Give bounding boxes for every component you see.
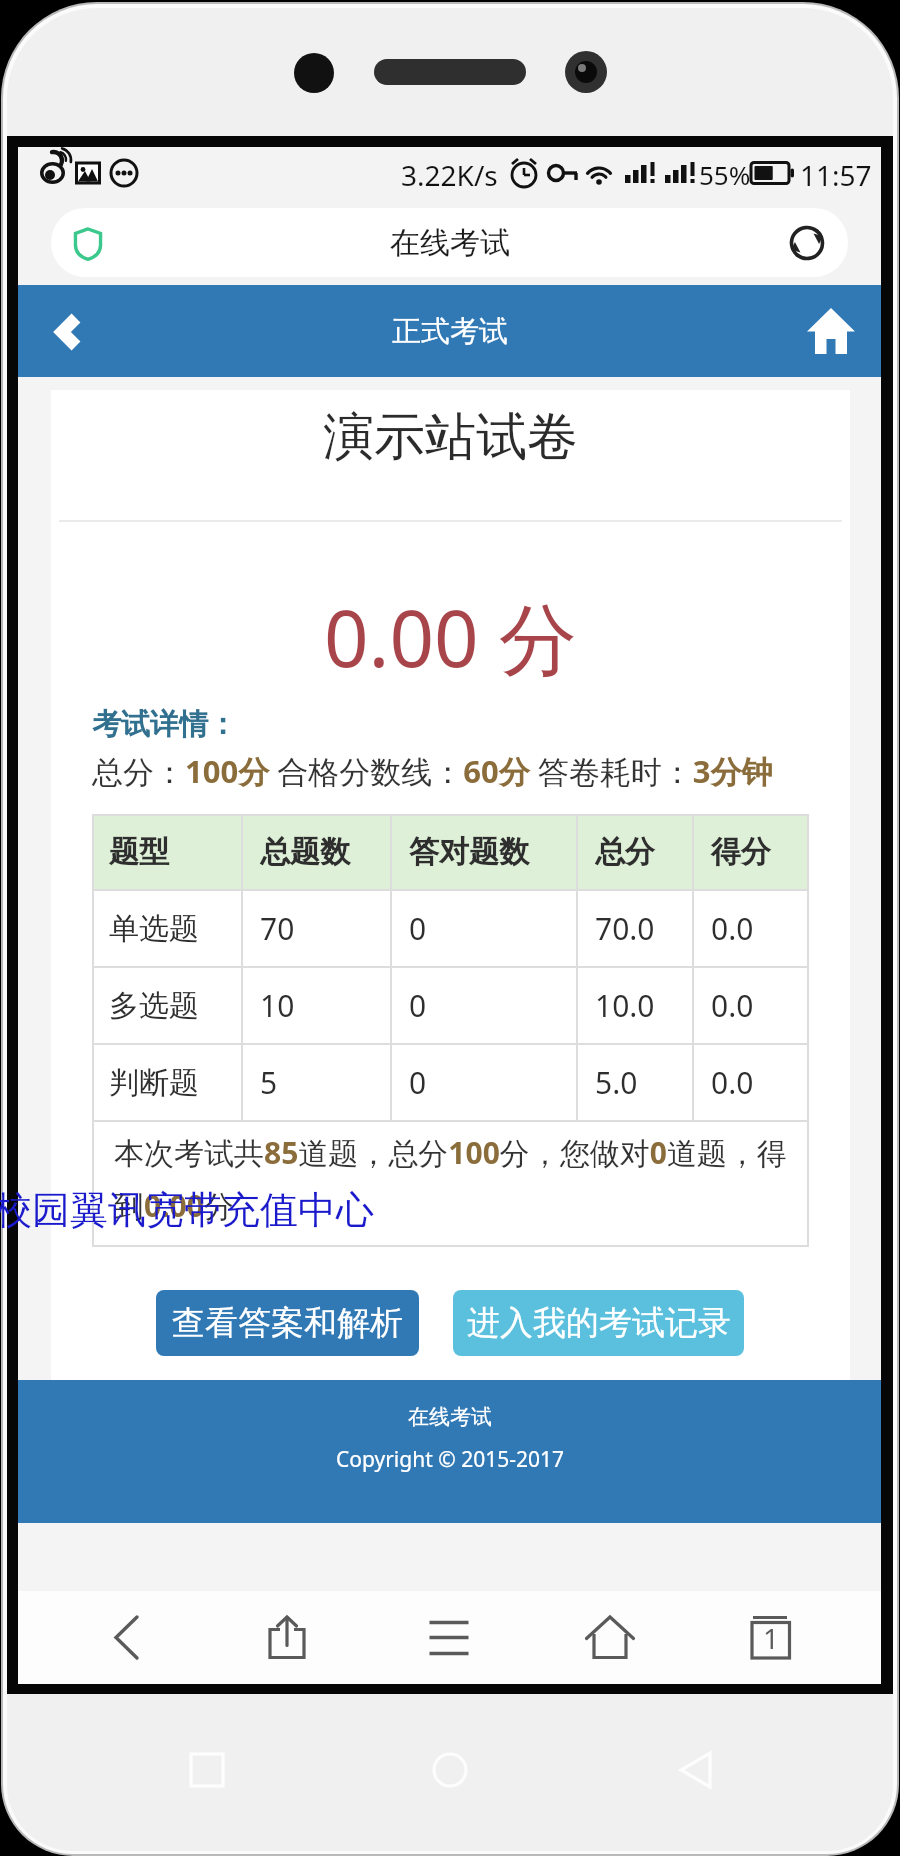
button[interactable]: Refresh: [784, 220, 830, 266]
button[interactable]: Back: [40, 302, 98, 360]
staticText: 在线考试: [390, 224, 510, 262]
other: Secure site: [69, 224, 107, 262]
staticText: 70: [260, 908, 295, 949]
staticText: 0.0: [711, 1062, 754, 1103]
button[interactable]: Tabs: [739, 1605, 803, 1669]
staticText: 0.00 分: [51, 584, 850, 691]
staticText: 校园翼讯宽带充值中心: [0, 1186, 374, 1234]
staticText: 答对题数: [409, 833, 529, 871]
staticText: 0: [409, 908, 427, 949]
staticText: 考试详情：: [92, 706, 237, 743]
button[interactable]: Back: [94, 1605, 158, 1669]
button[interactable]: Home: [578, 1605, 642, 1669]
button[interactable]: Home: [803, 303, 859, 359]
staticText: 演示站试卷: [51, 405, 850, 469]
staticText: 得分: [711, 833, 771, 871]
staticText: 正式考试: [392, 313, 508, 350]
staticText: 0: [409, 1062, 427, 1103]
staticText: 本次考试共85道题，总分100分，您做对0道题，得 到0.00分: [114, 1132, 787, 1226]
staticText: 总题数: [260, 833, 350, 871]
staticText: 70.0: [595, 908, 655, 949]
staticText: 查看答案和解析: [172, 1302, 403, 1344]
button[interactable]: Menu: [417, 1605, 481, 1669]
staticText: 10.0: [595, 985, 655, 1026]
staticText: 单选题: [109, 910, 199, 948]
staticText: 0.0: [711, 908, 754, 949]
staticText: 10: [260, 985, 295, 1026]
staticText: Copyright © 2015-2017: [336, 1445, 564, 1474]
button[interactable]: Share: [255, 1605, 319, 1669]
staticText: 5: [260, 1062, 278, 1103]
button[interactable]: 进入我的考试记录: [453, 1290, 744, 1356]
staticText: 55%: [699, 157, 751, 192]
staticText: 在线考试: [408, 1404, 492, 1430]
staticText: 1: [763, 1619, 780, 1657]
staticText: 判断题: [109, 1064, 199, 1102]
staticText: 3.22K/s: [401, 156, 498, 194]
staticText: 多选题: [109, 987, 199, 1025]
staticText: 0: [409, 985, 427, 1026]
staticText: 题型: [109, 833, 169, 871]
staticText: 0.0: [711, 985, 754, 1026]
staticText: 11:57: [800, 156, 872, 194]
staticText: 总分: [595, 833, 655, 871]
button[interactable]: Secure site: [51, 208, 848, 277]
staticText: 5.0: [595, 1062, 638, 1103]
button[interactable]: 查看答案和解析: [156, 1290, 419, 1356]
staticText: 进入我的考试记录: [467, 1302, 731, 1344]
staticText: 总分：100分 合格分数线：60分 答卷耗时：3分钟: [92, 750, 773, 792]
